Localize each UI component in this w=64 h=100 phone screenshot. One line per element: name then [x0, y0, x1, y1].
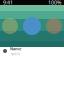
staticText: Name [10, 46, 21, 51]
staticText: 9:41 [3, 0, 13, 6]
staticText: mobile [10, 52, 20, 56]
staticText: 100% [48, 0, 61, 6]
